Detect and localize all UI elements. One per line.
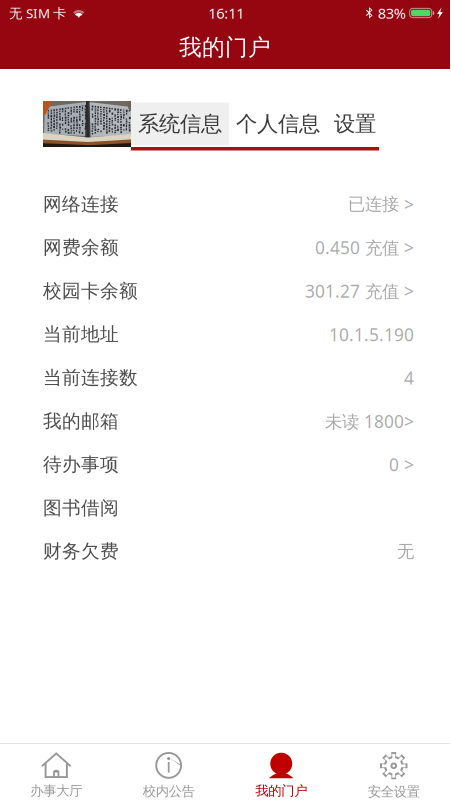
button[interactable]: 校内公告 (112, 744, 225, 800)
button[interactable]: 当前地址 (0, 313, 450, 356)
button[interactable]: 待办事项 (0, 443, 450, 486)
staticText: 网费余额 (43, 236, 119, 259)
staticText: 网络连接 (43, 193, 119, 216)
staticText: 当前地址 (43, 323, 119, 346)
staticText: > (404, 453, 414, 476)
staticText: 当前连接数 (43, 366, 138, 389)
button[interactable]: 我的门户 (225, 744, 337, 800)
button[interactable]: 财务欠费 (0, 530, 450, 573)
staticText: 10.1.5.190 (329, 323, 414, 346)
staticText: 财务欠费 (43, 540, 119, 563)
staticText: > (404, 279, 414, 302)
button[interactable]: 个人信息 (229, 102, 327, 145)
staticText: 16:11 (208, 3, 244, 23)
staticText: 图书借阅 (43, 496, 119, 519)
staticText: 校内公告 (143, 783, 195, 799)
staticText: > (404, 193, 414, 216)
staticText: 我的门户 (179, 34, 271, 61)
button[interactable]: 网络连接 (0, 182, 450, 226)
button[interactable]: 图书借阅 (0, 486, 450, 530)
staticText: 校园卡余额 (43, 279, 138, 302)
staticText: > (404, 236, 414, 259)
staticText: 未读 1800> (325, 410, 414, 433)
button[interactable]: 办事大厅 (0, 744, 112, 800)
staticText: 0 (389, 453, 399, 476)
staticText: 无 (397, 541, 414, 562)
staticText: 系统信息 (138, 111, 222, 137)
staticText: 安全设置 (368, 784, 420, 800)
staticText: 办事大厅 (30, 782, 82, 799)
button[interactable]: 系统信息 (131, 102, 229, 145)
button[interactable]: 设置 (327, 102, 383, 145)
button[interactable]: 网费余额 (0, 226, 450, 269)
staticText: 0.450 充值 (315, 236, 399, 259)
staticText: 我的门户 (255, 782, 307, 799)
staticText: 83% (378, 3, 406, 23)
button[interactable]: 安全设置 (337, 744, 450, 800)
staticText: 设置 (334, 111, 376, 137)
button[interactable]: 我的邮箱 (0, 399, 450, 443)
staticText: 4 (404, 366, 414, 389)
staticText: 301.27 充值 (305, 279, 399, 302)
staticText: 待办事项 (43, 453, 119, 476)
staticText: 已连接 (348, 194, 399, 215)
staticText: 个人信息 (236, 111, 320, 137)
staticText: 我的邮箱 (43, 410, 119, 433)
button[interactable]: 校园卡余额 (0, 269, 450, 313)
staticText: 无 SIM 卡 (9, 4, 66, 22)
button[interactable]: 当前连接数 (0, 356, 450, 399)
